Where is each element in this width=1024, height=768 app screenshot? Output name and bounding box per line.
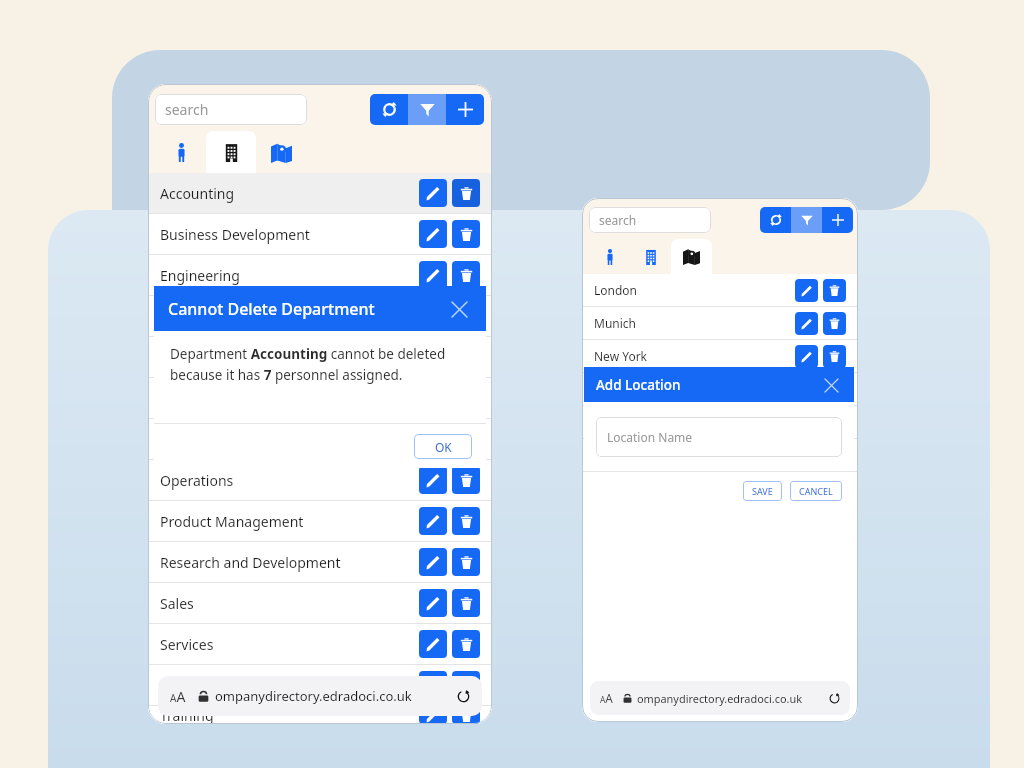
other: Reload <box>829 693 840 704</box>
button[interactable]: Delete Munich <box>823 312 846 335</box>
button[interactable]: Delete Tokyo <box>823 444 846 467</box>
button[interactable]: Edit Support <box>419 671 447 699</box>
staticText: London <box>594 282 638 298</box>
button[interactable]: Locations <box>671 239 712 274</box>
staticText: Cannot Delete Department <box>168 298 375 320</box>
staticText: ompanydirectory.edradoci.co.uk <box>215 687 412 705</box>
button[interactable]: Delete Research and Development <box>452 548 480 576</box>
button[interactable]: Edit Research and Development <box>419 548 447 576</box>
button[interactable]: Refresh <box>760 207 791 233</box>
button[interactable]: Departments <box>630 239 671 274</box>
button[interactable]: Accounting <box>148 173 492 214</box>
staticText: ompanydirectory.edradoci.co.uk <box>637 691 803 706</box>
button[interactable]: Edit Tokyo <box>795 444 818 467</box>
button[interactable]: Human Resources <box>148 337 492 378</box>
staticText: San Francisco <box>594 414 671 430</box>
button[interactable]: Delete Engineering <box>452 261 480 289</box>
button[interactable]: Filter <box>791 207 822 233</box>
staticText: Sales <box>160 594 194 613</box>
button[interactable]: Legal <box>148 378 492 419</box>
staticText: Human Resources <box>160 348 280 367</box>
button[interactable]: Edit London <box>795 279 818 302</box>
button[interactable]: SAVE <box>743 481 782 501</box>
button[interactable]: Edit Accounting <box>419 179 447 207</box>
staticText: Engineering <box>160 266 240 285</box>
button[interactable]: Delete Services <box>452 630 480 658</box>
button[interactable]: London <box>582 274 858 307</box>
button[interactable]: Finance <box>148 296 492 337</box>
button[interactable]: Delete Product Management <box>452 507 480 535</box>
button[interactable]: Munich <box>582 307 858 340</box>
button[interactable]: Delete Support <box>452 671 480 699</box>
button[interactable]: Locations <box>256 131 306 173</box>
button[interactable]: Edit Human Resources <box>419 343 447 371</box>
button[interactable]: Marketing <box>148 419 492 460</box>
staticText: SAVE <box>752 485 773 497</box>
button[interactable]: Engineering <box>148 255 492 296</box>
button[interactable]: Edit Operations <box>419 466 447 494</box>
button[interactable]: Delete Training <box>452 706 480 724</box>
button[interactable]: Edit Sales <box>419 589 447 617</box>
button[interactable]: Edit Business Development <box>419 220 447 248</box>
button[interactable]: Support <box>148 665 492 706</box>
button[interactable]: Edit Training <box>419 706 447 724</box>
button[interactable]: Close <box>446 296 472 322</box>
button[interactable]: Delete Paris <box>823 378 846 401</box>
button[interactable]: Delete Business Development <box>452 220 480 248</box>
button[interactable]: Product Management <box>148 501 492 542</box>
button[interactable]: Location Name <box>596 417 842 457</box>
button[interactable]: Edit San Francisco <box>795 411 818 434</box>
button[interactable]: Add <box>446 94 484 125</box>
staticText: Tokyo <box>594 447 627 463</box>
button[interactable]: Delete London <box>823 279 846 302</box>
button[interactable]: CANCEL <box>790 481 842 501</box>
button[interactable]: People <box>589 239 630 274</box>
button[interactable]: People <box>156 131 206 173</box>
button[interactable]: Close <box>820 374 842 396</box>
other: Reload <box>457 690 470 703</box>
button[interactable]: search <box>155 94 307 125</box>
button[interactable]: Filter <box>408 94 446 125</box>
button[interactable]: Delete Accounting <box>452 179 480 207</box>
button[interactable]: Delete Operations <box>452 466 480 494</box>
button[interactable]: Refresh <box>370 94 408 125</box>
button[interactable]: Edit Marketing <box>419 425 447 453</box>
button[interactable]: Paris <box>582 373 858 406</box>
button[interactable]: New York <box>582 340 858 373</box>
button[interactable]: San Francisco <box>582 406 858 439</box>
button[interactable]: Delete Finance <box>452 302 480 330</box>
button[interactable]: OK <box>414 434 472 459</box>
button[interactable]: Operations <box>148 460 492 501</box>
button[interactable]: Business Development <box>148 214 492 255</box>
staticText: Training <box>160 706 214 724</box>
button[interactable]: Delete Sales <box>452 589 480 617</box>
button[interactable]: search <box>589 207 711 233</box>
button[interactable]: Training <box>148 706 492 724</box>
button[interactable]: Edit New York <box>795 345 818 368</box>
button[interactable]: Tokyo <box>582 439 858 472</box>
button[interactable]: Delete Marketing <box>452 425 480 453</box>
button[interactable]: Sales <box>148 583 492 624</box>
staticText: Services <box>160 635 214 654</box>
staticText: Operations <box>160 471 234 490</box>
button[interactable]: Add <box>822 207 853 233</box>
button[interactable]: AA <box>158 676 482 716</box>
button[interactable]: Edit Munich <box>795 312 818 335</box>
button[interactable]: Departments <box>206 131 256 173</box>
button[interactable]: AA <box>590 681 850 715</box>
button[interactable]: Edit Services <box>419 630 447 658</box>
button[interactable]: Edit Product Management <box>419 507 447 535</box>
button[interactable]: Services <box>148 624 492 665</box>
button[interactable]: Research and Development <box>148 542 492 583</box>
staticText: Add Location <box>596 376 681 394</box>
staticText: Paris <box>594 381 622 397</box>
button[interactable]: Edit Engineering <box>419 261 447 289</box>
button[interactable]: Delete New York <box>823 345 846 368</box>
button[interactable]: Delete San Francisco <box>823 411 846 434</box>
staticText: Business Development <box>160 225 310 244</box>
